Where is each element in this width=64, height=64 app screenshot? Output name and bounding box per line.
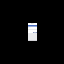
button[interactable]: Weekly report xyxy=(28,27,37,29)
staticText: Weekly report xyxy=(28,27,31,28)
button[interactable]: Next session xyxy=(28,30,37,33)
button[interactable]: View details xyxy=(33,32,37,33)
